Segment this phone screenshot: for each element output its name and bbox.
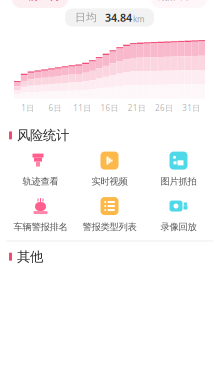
button[interactable]: 录像回放 (144, 195, 213, 232)
staticText: 警报类型列表 (82, 221, 136, 232)
button[interactable]: 车辆警报排名 (6, 195, 75, 232)
button[interactable]: ‹ (12, 0, 68, 8)
staticText: 26日 (155, 103, 173, 113)
staticText: 34.84 (105, 10, 132, 25)
staticText: 31日 (182, 103, 200, 113)
staticText: 11日 (73, 103, 91, 113)
staticText: 轨迹查看 (22, 176, 58, 187)
staticText: 后一月 (158, 0, 191, 3)
staticText: 其他 (17, 248, 43, 265)
staticText: km (133, 14, 144, 25)
staticText: km (162, 0, 176, 3)
staticText: 16日 (100, 103, 118, 113)
staticText: 1日 (21, 103, 34, 113)
staticText: 日均 (75, 11, 97, 24)
staticText: 1463.32 (43, 0, 160, 6)
staticText: 21日 (128, 103, 146, 113)
staticText: 录像回放 (160, 221, 196, 232)
button[interactable]: 图片抓拍 (144, 150, 213, 187)
staticText: 实时视频 (91, 176, 127, 187)
staticText: 6日 (48, 103, 61, 113)
button[interactable]: 实时视频 (75, 150, 144, 187)
button[interactable]: 后一月 (151, 0, 207, 8)
staticText: 风险统计 (17, 127, 69, 144)
staticText: 图片抓拍 (160, 176, 196, 187)
button[interactable]: 警报类型列表 (75, 195, 144, 232)
staticText: 前一月 (28, 0, 61, 3)
staticText: 车辆警报排名 (13, 221, 67, 232)
button[interactable]: 轨迹查看 (6, 150, 75, 187)
